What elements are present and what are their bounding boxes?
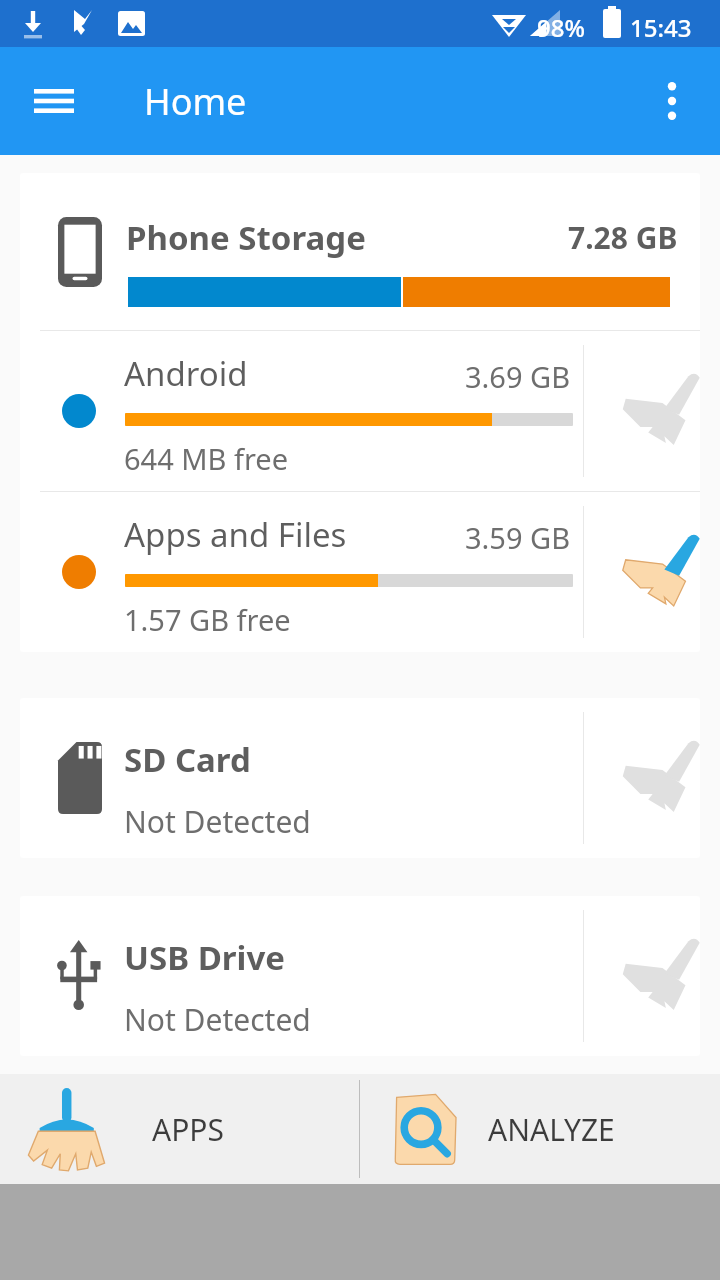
staticText: 7.28 GB <box>568 217 678 258</box>
button[interactable]: APPS <box>0 1074 359 1184</box>
staticText: 644 MB free <box>124 439 289 478</box>
button[interactable]: Android <box>20 331 700 491</box>
button[interactable]: Clean USB Drive <box>611 934 700 1018</box>
staticText: Not Detected <box>124 999 311 1040</box>
staticText: Apps and Files <box>124 512 347 557</box>
staticText: Android <box>124 351 248 396</box>
staticText: Phone Storage <box>126 215 366 260</box>
staticText: 15:43 <box>630 11 692 44</box>
button[interactable]: More options <box>638 67 706 135</box>
button[interactable]: Clean Apps and Files <box>611 530 700 614</box>
staticText: SD Card <box>124 737 251 782</box>
staticText: Not Detected <box>124 801 311 842</box>
staticText: 1.57 GB free <box>124 600 291 639</box>
staticText: 3.69 GB <box>465 357 571 396</box>
staticText: APPS <box>152 1109 224 1150</box>
staticText: USB Drive <box>124 935 285 980</box>
button[interactable]: ANALYZE <box>360 1074 720 1184</box>
staticText: 98% <box>537 11 585 44</box>
button[interactable]: Open navigation menu <box>20 67 88 135</box>
button[interactable]: Clean SD Card <box>611 736 700 820</box>
button[interactable]: Apps and Files <box>20 492 700 652</box>
button[interactable]: Clean Android <box>611 369 700 453</box>
staticText: 3.59 GB <box>465 518 571 557</box>
button[interactable]: USB Drive <box>20 896 700 1056</box>
button[interactable]: SD Card <box>20 698 700 858</box>
staticText: ANALYZE <box>488 1109 615 1150</box>
staticText: Home <box>144 77 247 126</box>
button[interactable]: Phone Storage <box>20 173 700 652</box>
